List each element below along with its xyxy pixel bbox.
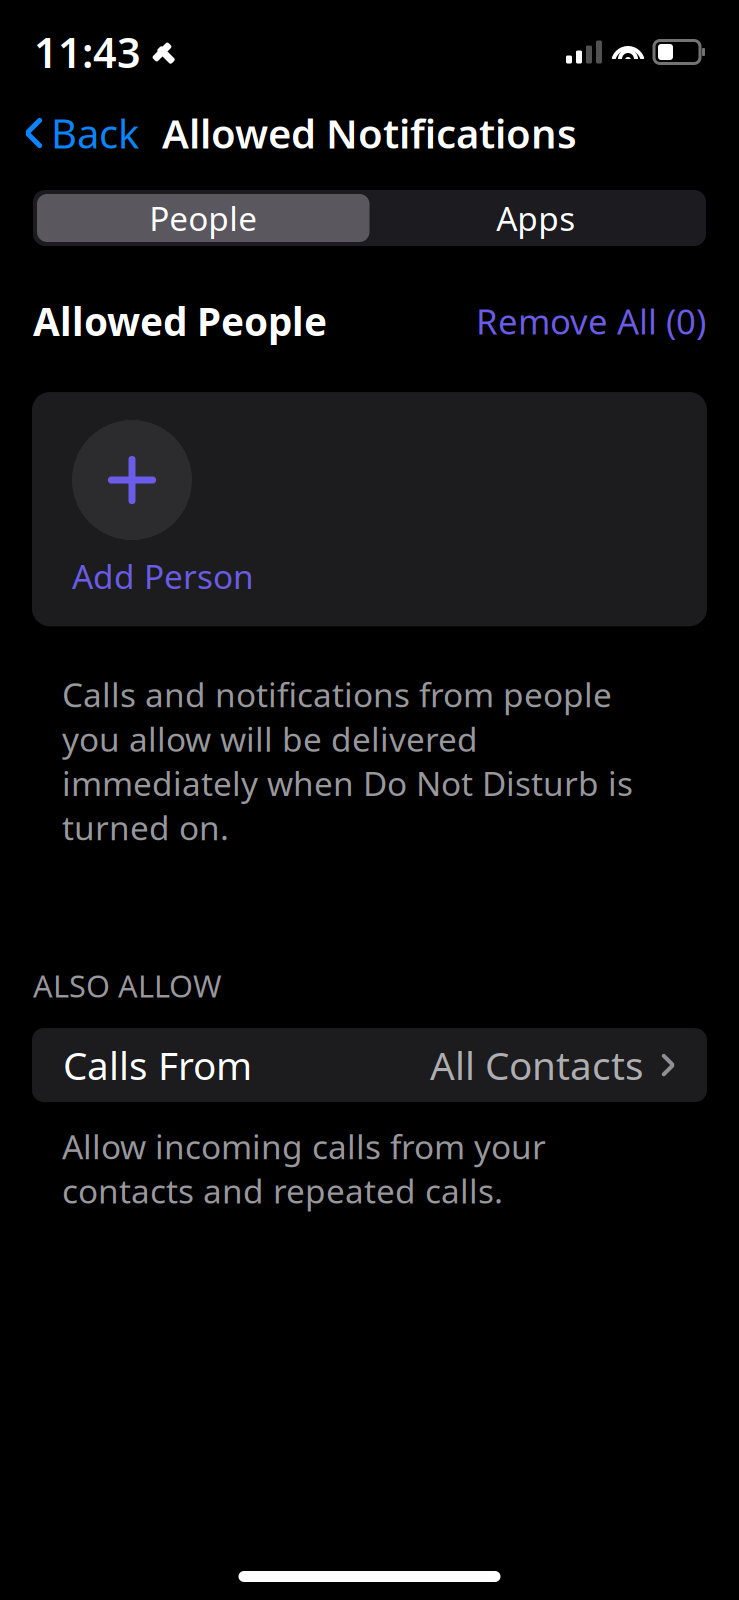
staticText: Allow incoming calls from your contacts … <box>62 1124 546 1213</box>
staticText: Apps <box>496 196 575 240</box>
staticText: Calls From <box>63 1039 252 1091</box>
staticText: Remove All (0) <box>476 298 706 344</box>
staticText: Allowed People <box>33 295 327 347</box>
staticText: Add Person <box>72 554 254 598</box>
button[interactable]: Apps <box>369 194 702 242</box>
staticText: All Contacts <box>430 1039 644 1091</box>
button[interactable]: People <box>37 194 369 242</box>
button[interactable]: Calls From <box>32 1028 707 1102</box>
staticText: Back <box>51 106 139 159</box>
button[interactable]: Remove All (0) <box>466 290 706 352</box>
staticText: Calls and notifications from people you … <box>62 672 633 849</box>
button[interactable]: Back <box>10 96 153 169</box>
button[interactable]: Add Person <box>32 392 707 626</box>
staticText: ALSO ALLOW <box>33 965 222 1006</box>
staticText: People <box>149 196 257 240</box>
staticText: Allowed Notifications <box>162 106 577 159</box>
staticText: 11:43 <box>34 25 141 79</box>
